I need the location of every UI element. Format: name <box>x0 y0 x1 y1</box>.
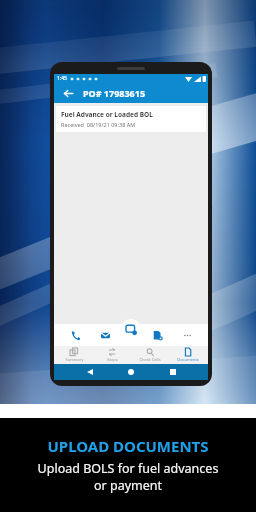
button[interactable]: Documents <box>170 346 206 364</box>
button[interactable]: Messages <box>96 326 114 344</box>
staticText: Documents <box>177 357 199 362</box>
staticText: Upload BOLS for fuel advances <box>0 460 256 477</box>
button[interactable]: Back <box>61 86 75 100</box>
button[interactable]: Check Calls <box>132 346 168 364</box>
button[interactable]: Documents <box>148 326 166 344</box>
button[interactable]: Back <box>84 366 96 378</box>
staticText: UPLOAD DOCUMENTS <box>0 436 256 456</box>
button[interactable]: Recents <box>167 366 179 378</box>
staticText: 1:45 <box>57 75 67 82</box>
button[interactable]: Summary <box>56 346 92 364</box>
button[interactable]: Call <box>66 326 84 344</box>
staticText: PO# 17983615 <box>83 87 146 99</box>
button[interactable]: Fuel Advance or Loaded BOL <box>56 106 206 132</box>
button[interactable]: More <box>178 326 196 344</box>
staticText: Fuel Advance or Loaded BOL <box>61 110 153 119</box>
button[interactable]: Scan <box>121 319 141 339</box>
staticText: or payment <box>0 477 256 494</box>
button[interactable]: Home <box>125 366 137 378</box>
staticText: Summary <box>65 357 84 362</box>
button[interactable]: Stops <box>94 346 130 364</box>
staticText: Stops <box>107 357 118 362</box>
staticText: Check Calls <box>139 357 161 362</box>
staticText: Received 08/19/21 09:38 AM <box>61 121 136 128</box>
